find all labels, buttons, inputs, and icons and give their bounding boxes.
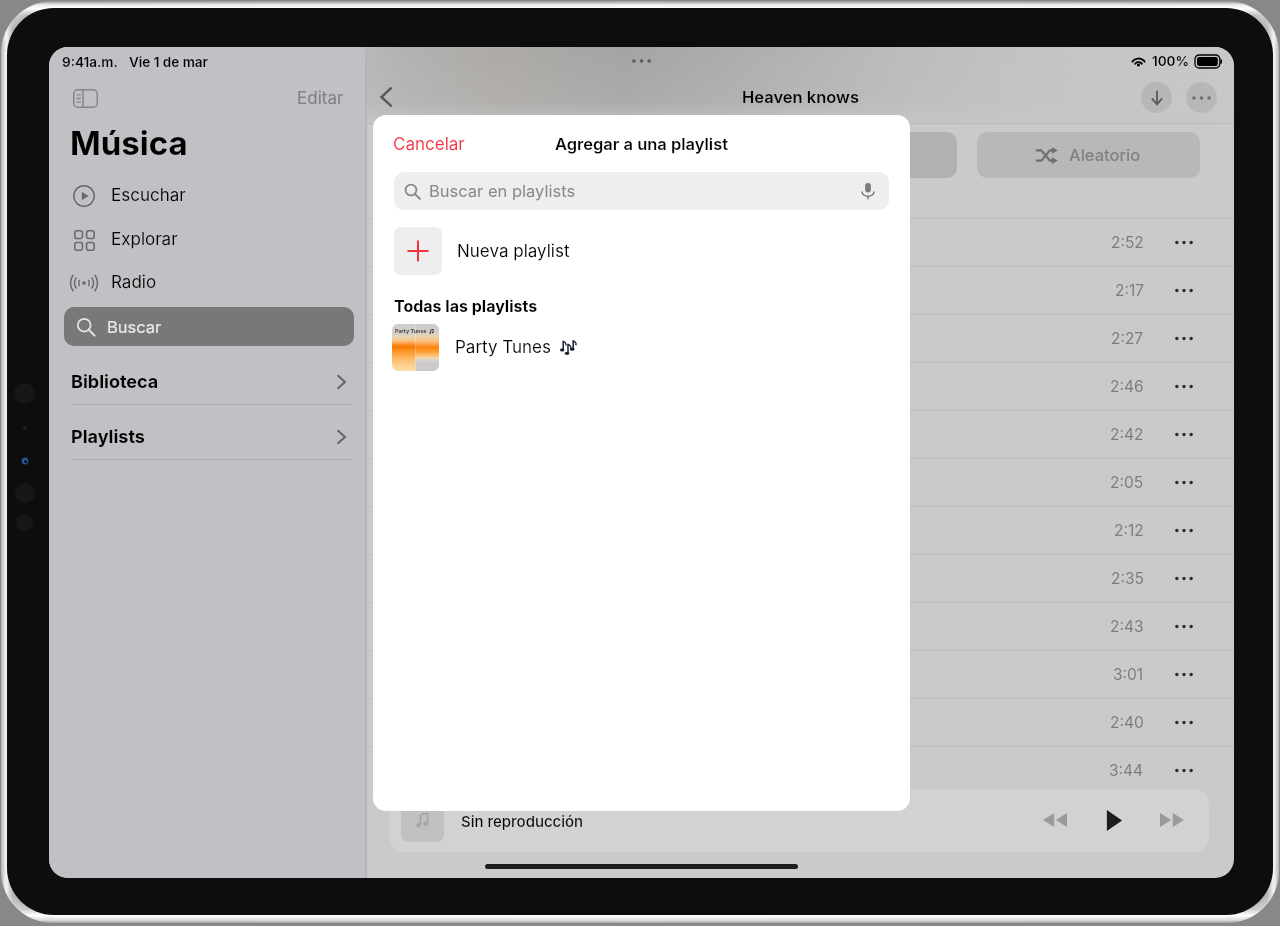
staticText: Agregar a una playlist [555,134,729,154]
button[interactable]: Radio [49,261,366,304]
staticText: Aleatorio [1069,145,1141,165]
button[interactable]: 2:40 [367,699,1234,746]
staticText: 2:43 [1110,617,1144,636]
staticText: Playlists [71,426,145,448]
button[interactable]: Escuchar [49,174,366,217]
button[interactable]: Editar [289,82,351,114]
staticText: Biblioteca [71,371,159,393]
staticText: 2:42 [1110,425,1144,444]
staticText: Buscar [107,317,162,337]
button[interactable]: 3:44 [367,747,1234,794]
staticText: Sin reproducción [461,812,584,830]
staticText: Heaven knows [742,87,860,107]
button[interactable]: 2:35 [367,555,1234,602]
button[interactable]: Siguiente [1154,802,1190,838]
staticText: Todas las playlists [394,296,538,315]
button[interactable]: More options [1186,82,1217,113]
staticText: Party Tunes [455,337,551,358]
button[interactable]: Playlists [49,415,366,459]
button[interactable]: Buscar [64,307,354,346]
button[interactable]: Toggle sidebar [69,82,101,114]
staticText: Música [70,123,188,163]
staticText: 2:12 [1114,521,1144,540]
button[interactable]: Anterior [1037,802,1073,838]
staticText: Escuchar [111,185,186,206]
button[interactable]: 3:01 [367,651,1234,698]
staticText: 9:41a.m. [62,54,118,70]
button[interactable]: Party Tunes [373,323,910,371]
staticText: Buscar en playlists [429,181,576,201]
staticText: Vie 1 de mar [129,54,208,70]
button[interactable]: Reproducir [717,132,957,178]
button[interactable]: Reproducir [1095,802,1131,838]
staticText: 2:52 [1111,233,1144,252]
button[interactable]: Explorar [49,218,366,261]
staticText: Explorar [111,229,178,250]
button[interactable]: 2:27 [367,315,1234,362]
staticText: 100% [1152,53,1190,69]
staticText: 2:05 [1110,473,1144,492]
button[interactable]: 2:42 [367,411,1234,458]
staticText: 2:27 [1111,329,1144,348]
button[interactable]: 2:46 [367,363,1234,410]
button[interactable]: Nueva playlist [373,225,910,277]
staticText: Party Tunes [395,328,427,335]
button[interactable]: Buscar en playlists [394,172,889,210]
staticText: 3:44 [1109,761,1144,780]
button[interactable]: 2:43 [367,603,1234,650]
staticText: 2:40 [1110,713,1144,732]
button[interactable]: 2:05 [367,459,1234,506]
button[interactable]: 2:12 [367,507,1234,554]
staticText: 2:17 [1115,281,1144,300]
staticText: Cancelar [393,134,465,155]
button[interactable]: 2:52 [367,219,1234,266]
button[interactable]: Aleatorio [977,132,1200,178]
staticText: Radio [111,272,157,293]
button[interactable]: Multitasking [621,54,661,68]
button[interactable]: 2:17 [367,267,1234,314]
staticText: 2:35 [1111,569,1144,588]
staticText: 2:46 [1110,377,1144,396]
staticText: Editar [297,88,344,109]
staticText: 3:01 [1113,665,1144,684]
staticText: Nueva playlist [457,241,570,262]
button[interactable]: Cancelar [393,134,465,155]
button[interactable]: Download [1141,82,1172,113]
button[interactable]: Biblioteca [49,360,366,404]
button[interactable]: Back [367,78,404,116]
